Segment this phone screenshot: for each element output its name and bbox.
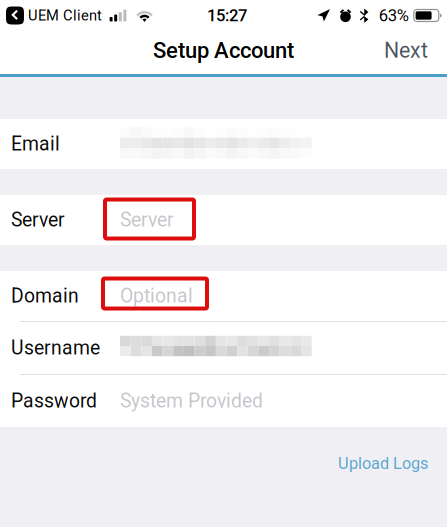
staticText: Domain bbox=[11, 285, 79, 307]
staticText: Upload Logs bbox=[338, 454, 428, 473]
staticText: 15:27 bbox=[207, 6, 247, 25]
staticText: Server bbox=[120, 209, 174, 231]
staticText: Server bbox=[11, 209, 65, 231]
staticText: System Provided bbox=[120, 390, 263, 412]
staticText: Next bbox=[384, 38, 428, 63]
button[interactable]: Upload Logs bbox=[327, 446, 439, 481]
staticText: Username bbox=[11, 337, 100, 359]
staticText: Optional bbox=[120, 285, 193, 307]
staticText: UEM Client bbox=[28, 7, 102, 24]
staticText: Password bbox=[11, 390, 97, 412]
button[interactable]: Next bbox=[370, 30, 442, 75]
staticText: Email bbox=[11, 133, 60, 155]
staticText: Setup Account bbox=[153, 38, 294, 63]
staticText: 63% bbox=[379, 6, 409, 25]
